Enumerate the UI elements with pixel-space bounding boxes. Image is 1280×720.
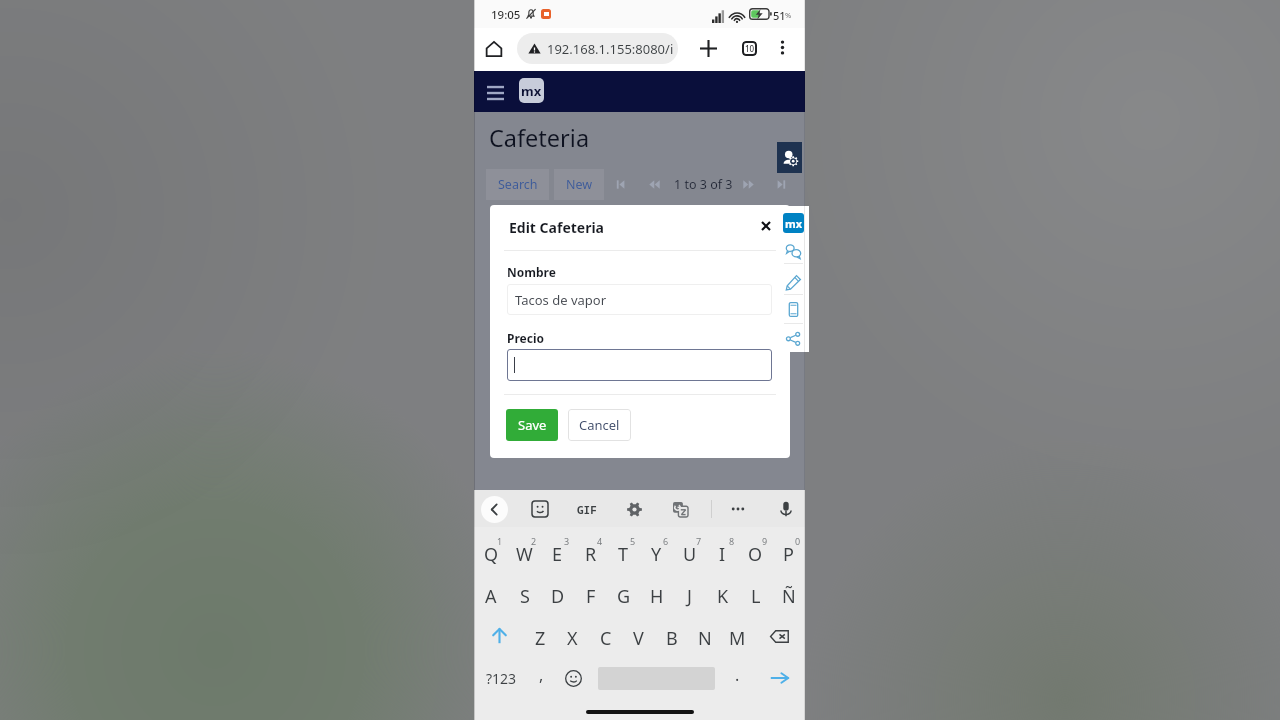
button[interactable]: more [725,496,751,522]
staticText: O [748,542,763,567]
staticText: Save [518,416,547,434]
button[interactable]: Q [474,531,508,573]
button[interactable]: Next [738,172,758,196]
button[interactable]: ?123 [483,657,520,699]
staticText: 1 to 3 of 3 [674,176,733,193]
button[interactable]: Cancel [568,409,631,441]
staticText: Tacos de vapor [515,291,607,309]
staticText: N [698,626,712,651]
button[interactable]: Back [481,496,508,523]
staticText: 4 [597,535,603,547]
staticText: Search [498,176,538,193]
button[interactable]: O [739,531,772,573]
button[interactable]: Action [778,269,809,295]
button[interactable]: Backspace [754,615,805,657]
staticText: Ñ [782,584,796,609]
button[interactable]: settings [621,496,647,522]
button[interactable]: , [529,657,554,699]
staticText: 3 [564,535,570,547]
button[interactable]: J [673,573,706,615]
staticText: 51 [773,8,786,23]
button[interactable]: X [556,615,589,657]
button[interactable]: L [739,573,772,615]
button[interactable]: N [688,615,721,657]
button[interactable]: Action [778,238,809,264]
button[interactable]: New tab [695,35,721,61]
staticText: P [783,542,794,567]
button[interactable]: T [607,531,640,573]
button[interactable]: . [725,657,750,699]
button[interactable]: D [541,573,574,615]
button[interactable]: Save [506,409,558,441]
button[interactable]: Mendix home [519,78,544,103]
button[interactable]: Tabs [736,35,762,61]
staticText: Cafeteria [489,122,590,154]
button[interactable]: Previous [644,172,664,196]
button[interactable]: Close [755,215,777,237]
staticText: H [650,584,664,609]
button[interactable]: Previous [611,172,631,196]
button[interactable]: translate [667,496,693,522]
button[interactable]: K [706,573,739,615]
button[interactable]: Menu [482,79,508,105]
button[interactable]: mic [773,496,799,522]
staticText: G [617,584,631,609]
button[interactable]: R [574,531,607,573]
staticText: Q [484,542,499,567]
staticText: Y [651,542,662,567]
button[interactable]: mx [783,213,804,233]
button[interactable]: Z [524,615,556,657]
button[interactable]: Enter [766,657,793,699]
button[interactable]: C [589,615,622,657]
button[interactable]: Action [778,296,809,322]
staticText: U [683,542,697,567]
button[interactable]: Tacos de vapor [507,284,772,315]
staticText: Z [535,626,546,651]
staticText: 19:05 [491,7,521,23]
button[interactable]: More options [770,35,794,59]
staticText: 5 [630,535,636,547]
button[interactable]: U [673,531,706,573]
button[interactable]: S [508,573,541,615]
button[interactable]: Next [770,172,790,196]
button[interactable]: Emoji [561,657,586,699]
button[interactable]: E [541,531,574,573]
staticText: E [552,542,563,567]
button[interactable]: H [640,573,673,615]
button[interactable]: W [508,531,541,573]
staticText: B [666,626,678,651]
staticText: S [520,584,530,609]
button[interactable]: A [474,573,508,615]
staticText: 1 [497,535,503,547]
button[interactable]: I [706,531,739,573]
staticText: GIF [577,502,597,517]
button[interactable]: M [721,615,754,657]
button[interactable]: New [554,169,604,200]
staticText: R [585,542,597,567]
button[interactable]: Y [640,531,673,573]
button[interactable]: sticker [527,496,553,522]
button[interactable]: gif [574,496,600,522]
button[interactable]: B [655,615,688,657]
button[interactable]: Search [486,169,549,200]
staticText: 0 [795,535,801,547]
button[interactable]: Ñ [772,573,805,615]
staticText: ?123 [486,669,517,688]
button[interactable]: P [772,531,805,573]
button[interactable]: F [574,573,607,615]
staticText: Nombre [507,264,556,280]
button[interactable]: Action [778,325,809,351]
button[interactable]: Home [480,35,508,63]
staticText: C [600,626,612,651]
button[interactable]: Shift [474,615,524,657]
staticText: V [633,626,644,651]
button[interactable]: Account [777,142,802,173]
staticText: W [516,542,533,567]
button[interactable]: 192.168.1.155:8080/i [517,33,678,64]
staticText: 10 [745,43,755,54]
button[interactable]: Precio input [507,349,772,381]
staticText: % [785,10,792,20]
button[interactable]: V [622,615,655,657]
button[interactable]: G [607,573,640,615]
